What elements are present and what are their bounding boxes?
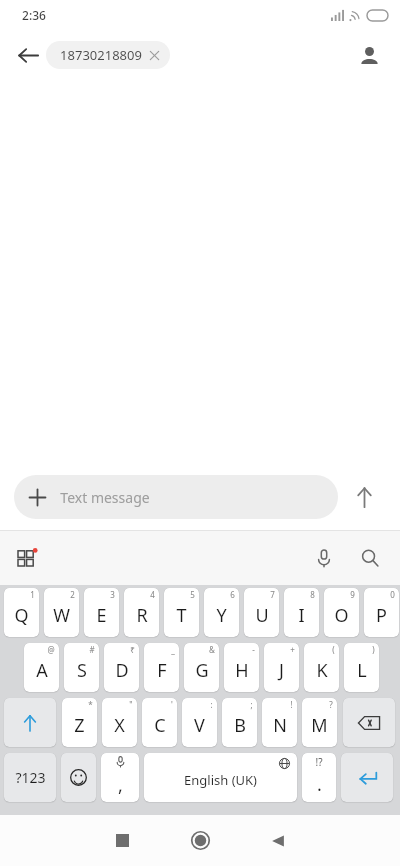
staticText: ?123 [15, 768, 46, 787]
button[interactable]: Enter [341, 753, 393, 802]
staticText: D [115, 658, 129, 683]
staticText: 2:36 [22, 7, 46, 23]
staticText: !? [315, 755, 323, 769]
staticText: " [129, 699, 133, 710]
staticText: E [96, 603, 107, 628]
button[interactable]: !? [302, 753, 336, 802]
staticText: ' [171, 699, 173, 710]
staticText: K [316, 658, 328, 683]
button[interactable]: 3 [84, 588, 119, 637]
staticText: P [376, 603, 387, 628]
staticText: _ [171, 644, 175, 655]
button[interactable]: ( [304, 643, 339, 692]
staticText: 1 [30, 589, 35, 600]
button[interactable]: 7 [244, 588, 279, 637]
staticText: I [298, 603, 305, 628]
staticText: A [36, 658, 48, 683]
staticText: 5 [190, 589, 195, 600]
button[interactable]: @ [24, 643, 59, 692]
button[interactable]: Backspace [343, 698, 395, 747]
button[interactable]: 1 [4, 588, 39, 637]
button[interactable]: 5 [164, 588, 199, 637]
button[interactable]: ) [344, 643, 379, 692]
button[interactable]: + [264, 643, 299, 692]
button[interactable]: Search [350, 538, 390, 578]
staticText: : [210, 699, 213, 710]
staticText: R [136, 603, 148, 628]
staticText: ( [332, 644, 335, 655]
button[interactable]: Home [172, 815, 228, 866]
staticText: C [154, 713, 166, 738]
staticText: ) [372, 644, 375, 655]
button[interactable]: " [102, 698, 137, 747]
staticText: X [114, 713, 125, 738]
button[interactable]: ; [222, 698, 257, 747]
button[interactable]: & [184, 643, 219, 692]
staticText: * [88, 699, 93, 710]
staticText: & [209, 644, 215, 655]
button[interactable]: Recents [94, 815, 150, 866]
staticText: Y [216, 603, 227, 628]
staticText: Q [14, 603, 29, 628]
button[interactable]: 18730218809 [46, 41, 170, 69]
staticText: H [235, 658, 249, 683]
staticText: 18730218809 [60, 46, 142, 64]
staticText: L [357, 658, 367, 683]
staticText: V [194, 713, 205, 738]
staticText: 4 [150, 589, 155, 600]
button[interactable]: Toolbar apps [8, 538, 48, 578]
button[interactable]: Text message [14, 475, 338, 519]
button[interactable]: Back [250, 815, 306, 866]
staticText: O [334, 603, 349, 628]
staticText: B [234, 713, 246, 738]
button[interactable]: ! [262, 698, 297, 747]
button[interactable]: Send [338, 471, 390, 523]
staticText: 8 [310, 589, 315, 600]
staticText: ; [250, 699, 253, 710]
staticText: M [311, 713, 328, 738]
staticText: Text message [60, 488, 150, 507]
button[interactable]: ?123 [4, 753, 56, 802]
button[interactable]: ' [142, 698, 177, 747]
button[interactable]: Contact [350, 36, 388, 74]
staticText: + [290, 644, 295, 655]
button[interactable]: 2 [44, 588, 79, 637]
button[interactable]: , [101, 753, 139, 802]
button[interactable]: _ [144, 643, 179, 692]
staticText: 3 [110, 589, 115, 600]
button[interactable]: Voice input [304, 538, 344, 578]
button[interactable]: Back [8, 35, 48, 75]
button[interactable]: Shift [4, 698, 56, 747]
staticText: 7 [270, 589, 275, 600]
button[interactable]: 4 [124, 588, 159, 637]
button[interactable]: - [224, 643, 259, 692]
staticText: English (UK) [184, 771, 257, 789]
button[interactable]: : [182, 698, 217, 747]
staticText: 9 [350, 589, 355, 600]
staticText: ₹ [130, 644, 135, 655]
button[interactable]: 6 [204, 588, 239, 637]
staticText: Z [74, 713, 85, 738]
button[interactable]: Emoji [61, 753, 96, 802]
staticText: G [195, 658, 209, 683]
staticText: F [157, 658, 167, 683]
button[interactable]: ? [302, 698, 337, 747]
button[interactable]: ₹ [104, 643, 139, 692]
button[interactable]: * [62, 698, 97, 747]
button[interactable]: 0 [364, 588, 399, 637]
staticText: T [176, 603, 187, 628]
staticText: - [252, 644, 255, 655]
staticText: J [279, 658, 284, 683]
staticText: U [255, 603, 269, 628]
button[interactable]: # [64, 643, 99, 692]
button[interactable]: 9 [324, 588, 359, 637]
button[interactable]: English (UK) [144, 753, 297, 802]
staticText: S [77, 658, 87, 683]
staticText: . [317, 772, 322, 797]
button[interactable]: 8 [284, 588, 319, 637]
staticText: ? [329, 699, 333, 710]
staticText: N [273, 713, 287, 738]
staticText: W [53, 603, 70, 628]
staticText: ! [290, 699, 293, 710]
staticText: 2 [70, 589, 75, 600]
